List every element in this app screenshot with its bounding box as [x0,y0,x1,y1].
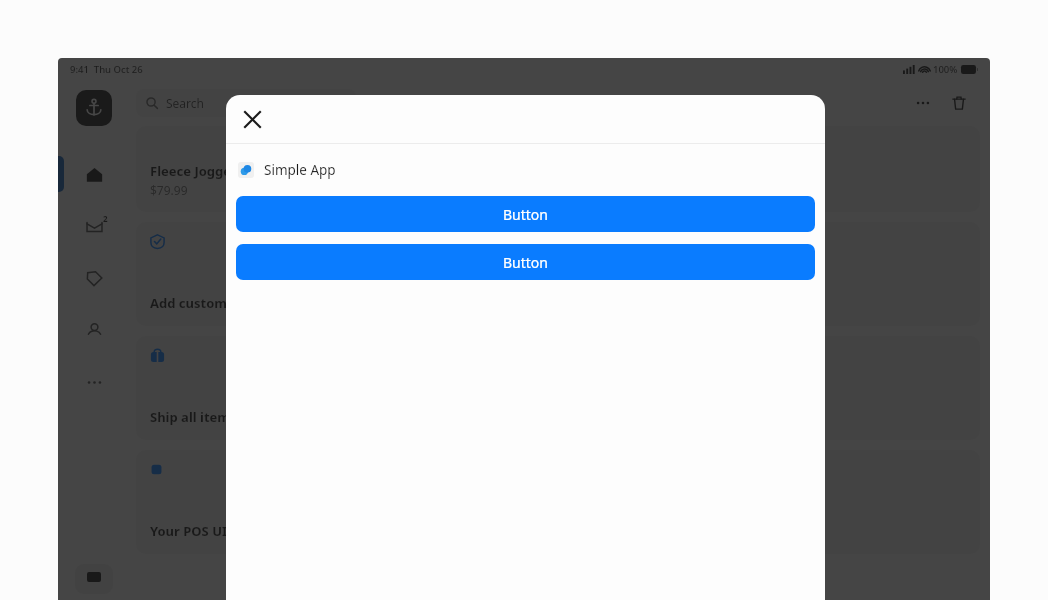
button[interactable]: Delete [944,88,974,118]
button[interactable]: Your POS UI [136,450,980,554]
button[interactable] [58,252,130,304]
staticText: $79.99 [150,182,188,198]
button[interactable] [58,304,130,356]
staticText: 9:41 Thu Oct 26 [70,63,143,76]
button[interactable]: More options [908,88,938,118]
staticText: Search [166,95,204,111]
staticText: Your POS UI [150,522,228,540]
button[interactable]: Add custom [136,222,980,326]
staticText: Simple App [264,161,336,179]
staticText: 2 [103,213,108,224]
button[interactable]: Ship all items [136,336,980,440]
staticText: Ship all items [150,408,237,426]
button[interactable]: Terminal [75,564,113,594]
staticText: Fleece Jogger [150,162,237,180]
button[interactable]: Button [236,244,815,280]
button[interactable] [58,148,130,200]
button[interactable]: Fleece Jogger [136,126,980,212]
staticText: 100% [933,63,958,76]
staticText: Add custom [150,294,227,312]
button[interactable]: Button [236,196,815,232]
button[interactable]: Close [232,99,272,139]
button[interactable]: 2 [58,200,130,252]
staticText: Button [503,253,548,272]
staticText: Button [503,205,548,224]
button[interactable]: App [76,90,112,126]
button[interactable]: Simple App [226,144,825,196]
button[interactable]: Search [136,89,356,117]
